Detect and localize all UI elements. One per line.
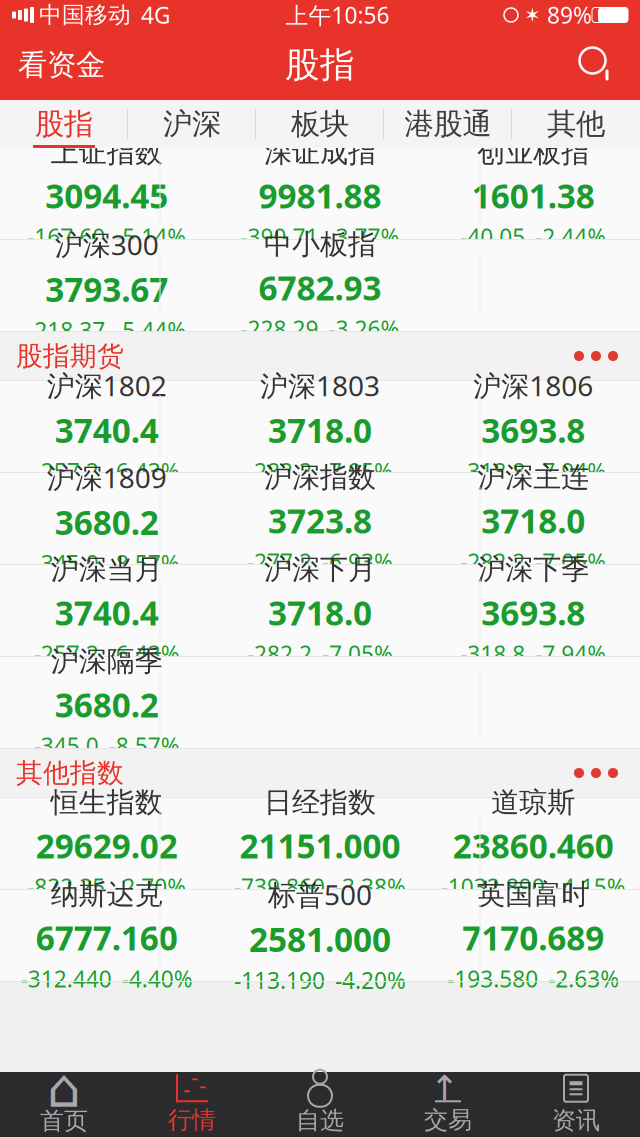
- staticText: 日经指数: [264, 785, 376, 819]
- button[interactable]: 看资金: [0, 33, 123, 97]
- button[interactable]: 港股通: [384, 100, 512, 148]
- staticText: -7.05%: [322, 639, 393, 669]
- button[interactable]: 标普500: [213, 890, 427, 981]
- staticText: -8.57%: [109, 731, 180, 761]
- staticText: 3718.0: [268, 590, 372, 635]
- staticText: 板块: [291, 106, 349, 142]
- button[interactable]: 上证指数: [0, 148, 213, 239]
- staticText: -257.2: [34, 456, 99, 486]
- staticText: 恒生指数: [51, 785, 163, 819]
- staticText: 3740.4: [55, 590, 159, 635]
- staticText: 上午10:56: [285, 0, 389, 30]
- button[interactable]: 纳斯达克: [0, 890, 213, 981]
- staticText: 港股通: [404, 106, 491, 142]
- staticText: -2.44%: [535, 222, 606, 252]
- staticText: -282.2: [247, 639, 312, 669]
- staticText: 21151.000: [239, 823, 400, 868]
- staticText: 3680.2: [55, 682, 159, 727]
- button[interactable]: ⌂: [0, 1072, 128, 1137]
- button[interactable]: 道琼斯: [427, 798, 640, 889]
- staticText: 3718.0: [268, 408, 372, 452]
- staticText: 英国富时: [477, 877, 589, 911]
- staticText: 沪深下季: [477, 552, 589, 586]
- staticText: -7.94%: [535, 639, 606, 669]
- button[interactable]: 沪深1802: [0, 381, 213, 472]
- staticText: -228.29: [240, 314, 318, 344]
- button[interactable]: 自选: [256, 1072, 384, 1137]
- button[interactable]: 沪深: [128, 100, 256, 148]
- button[interactable]: 日经指数: [213, 798, 427, 889]
- staticText: -739.860: [234, 872, 325, 902]
- staticText: 6782.93: [258, 265, 381, 310]
- staticText: -4.20%: [335, 965, 406, 995]
- button[interactable]: 沪深当月: [0, 565, 213, 656]
- staticText: 沪深: [163, 106, 221, 142]
- staticText: -40.05: [460, 222, 525, 252]
- staticText: 3693.8: [481, 590, 585, 635]
- button[interactable]: 沪深1806: [427, 381, 640, 472]
- staticText: 6777.160: [36, 915, 178, 960]
- staticText: 股指期货: [16, 340, 124, 372]
- button[interactable]: 沪深下季: [427, 565, 640, 656]
- staticText: 股指: [285, 44, 355, 86]
- staticText: 沪深300: [55, 226, 159, 263]
- staticText: -113.190: [234, 965, 325, 995]
- staticText: 沪深1806: [473, 367, 593, 404]
- button[interactable]: 沪深1809: [0, 473, 213, 564]
- button[interactable]: 英国富时: [427, 890, 640, 981]
- staticText: -1032.890: [441, 872, 545, 902]
- staticText: 23860.460: [453, 823, 614, 868]
- staticText: 其他: [547, 106, 605, 142]
- button[interactable]: 创业板指: [427, 148, 640, 239]
- staticText: -6.93%: [322, 547, 393, 577]
- button[interactable]: 沪深1803: [213, 381, 427, 472]
- button[interactable]: More: [568, 339, 624, 373]
- button[interactable]: 板块: [256, 100, 384, 148]
- button[interactable]: 恒生指数: [0, 798, 213, 889]
- staticText: 沪深隔季: [51, 644, 163, 678]
- staticText: -2.70%: [115, 872, 186, 902]
- staticText: -5.14%: [115, 222, 186, 252]
- staticText: 9981.88: [258, 173, 381, 218]
- staticText: 资讯: [552, 1106, 600, 1135]
- staticText: 7170.689: [462, 915, 604, 960]
- staticText: -6.43%: [109, 456, 180, 486]
- staticText: 沪深1809: [47, 459, 167, 496]
- staticText: 纳斯达克: [51, 877, 163, 911]
- button[interactable]: ↑: [384, 1072, 512, 1137]
- staticText: 深证成指: [264, 135, 376, 169]
- button[interactable]: 沪深300: [0, 240, 213, 331]
- button[interactable]: 股指: [0, 100, 128, 148]
- button[interactable]: 沪深指数: [213, 473, 427, 564]
- staticText: -257.2: [34, 639, 99, 669]
- button[interactable]: 其他: [512, 100, 640, 148]
- staticText: -4.40%: [122, 964, 193, 994]
- staticText: -345.0: [34, 731, 99, 761]
- staticText: -318.8: [460, 639, 525, 669]
- staticText: 沪深下月: [264, 552, 376, 586]
- staticText: -282.2: [247, 456, 312, 486]
- button[interactable]: 沪深隔季: [0, 657, 213, 748]
- button[interactable]: More: [568, 756, 624, 790]
- button[interactable]: 深证成指: [213, 148, 427, 239]
- button[interactable]: 沪深主连: [427, 473, 640, 564]
- staticText: -277.2: [247, 547, 312, 577]
- button[interactable]: 资讯: [512, 1072, 640, 1137]
- staticText: 其他指数: [16, 757, 124, 789]
- staticText: -312.440: [21, 964, 112, 994]
- staticText: 沪深当月: [51, 552, 163, 586]
- button[interactable]: 行情: [128, 1072, 256, 1137]
- staticText: 中小板指: [264, 227, 376, 261]
- button[interactable]: Search: [568, 36, 626, 94]
- staticText: -6.43%: [109, 639, 180, 669]
- staticText: 沪深指数: [264, 460, 376, 494]
- staticText: 创业板指: [477, 135, 589, 169]
- button[interactable]: 中小板指: [213, 240, 427, 331]
- staticText: 3094.45: [45, 173, 168, 218]
- button[interactable]: 沪深下月: [213, 565, 427, 656]
- staticText: -8.57%: [109, 548, 180, 578]
- staticText: -167.60: [27, 222, 105, 252]
